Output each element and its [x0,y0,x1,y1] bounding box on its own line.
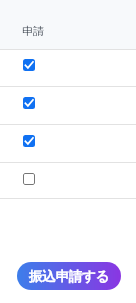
button[interactable]: 申請項目2 選択済み [0,87,136,124]
button[interactable]: 振込申請する [17,262,121,290]
button[interactable]: 申請項目3 選択済み [0,125,136,162]
staticText: 申請 [22,24,44,38]
staticText: 振込申請する [29,268,109,285]
button[interactable]: 申請項目4 未選択 [0,163,136,198]
button[interactable]: 申請項目1 選択済み [0,50,136,86]
